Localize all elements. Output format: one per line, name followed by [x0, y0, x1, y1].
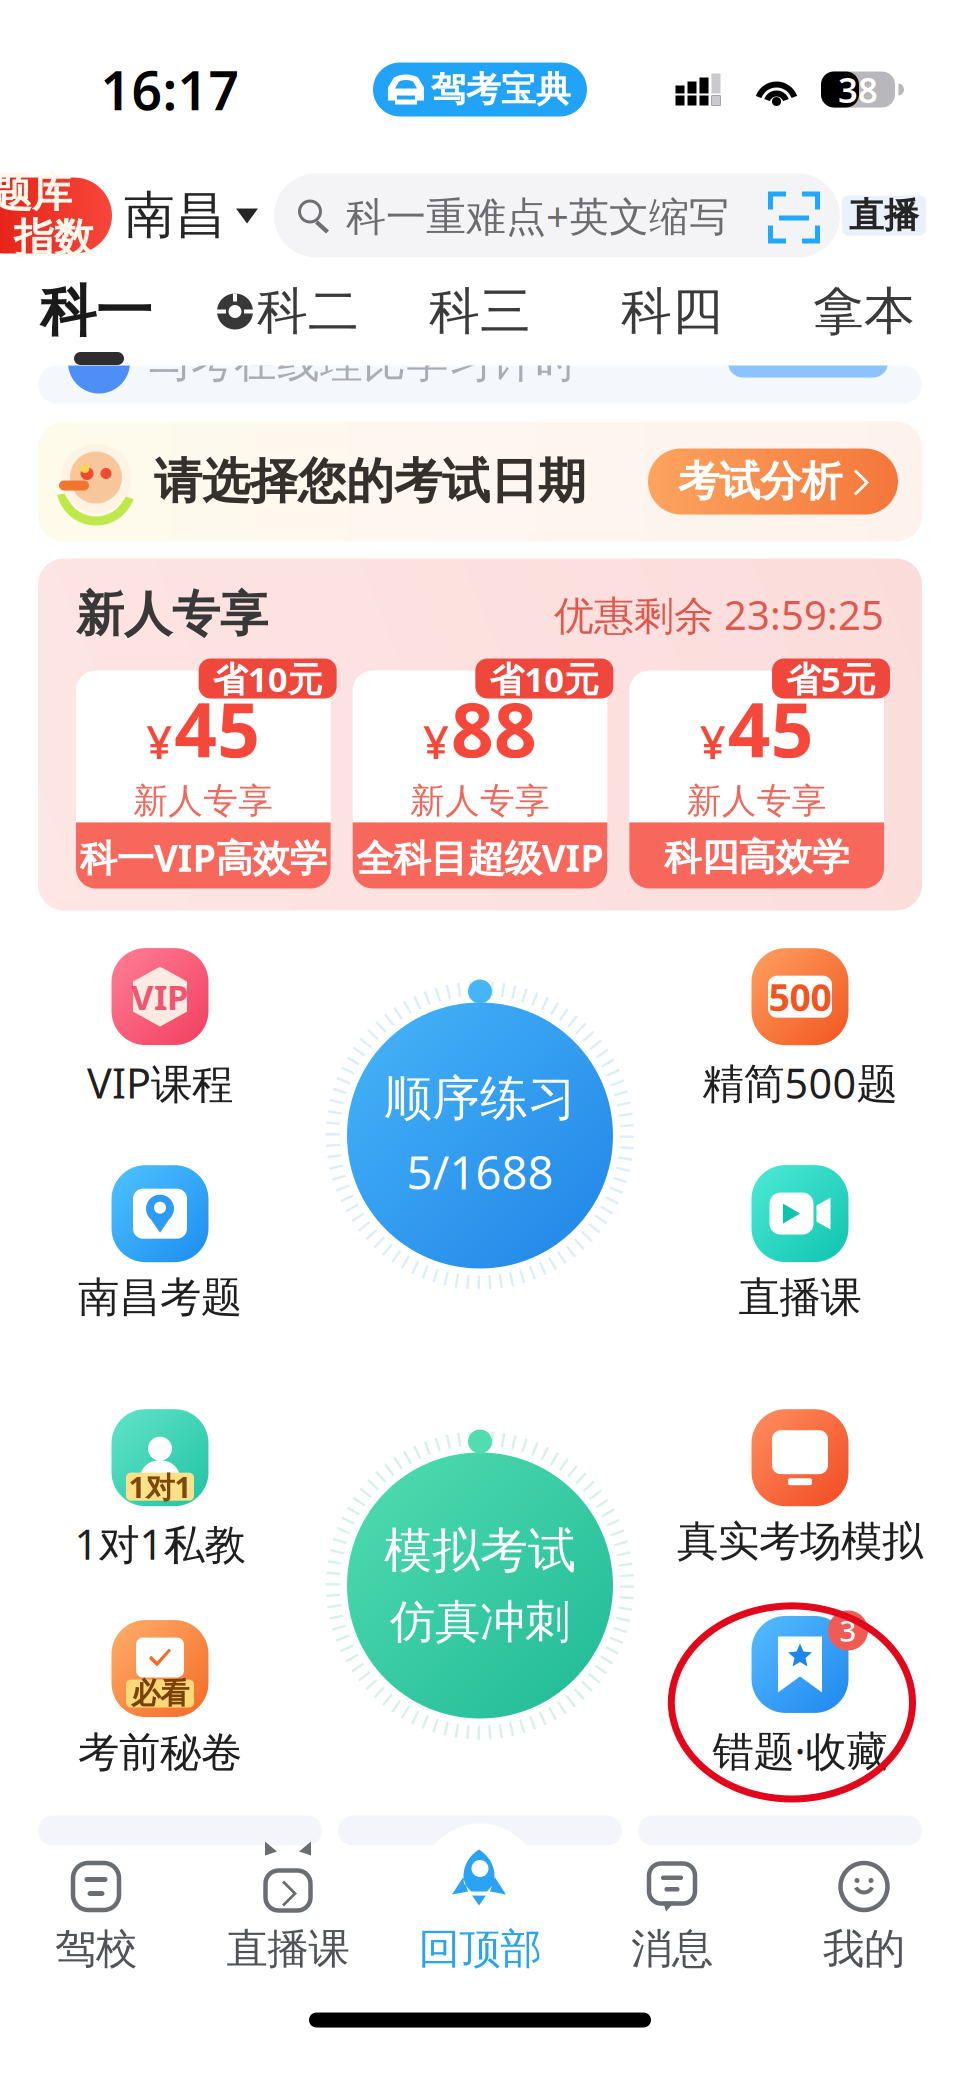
- staticText: 直播课: [226, 1923, 349, 1974]
- button[interactable]: 科四: [576, 271, 768, 351]
- button[interactable]: 3: [712, 1616, 887, 1778]
- staticText: 指数: [14, 213, 94, 263]
- button[interactable]: 500: [702, 948, 897, 1110]
- staticText: 拿本: [813, 280, 915, 343]
- button[interactable]: 直播课: [192, 1845, 384, 1977]
- staticText: 真实考场模拟: [677, 1516, 923, 1567]
- button[interactable]: 真实考场模拟: [677, 1409, 923, 1567]
- button[interactable]: ¥: [353, 670, 607, 888]
- staticText: 考试分析: [678, 456, 842, 507]
- button[interactable]: 我的: [768, 1845, 960, 1977]
- button[interactable]: ¥: [629, 670, 884, 888]
- staticText: 精简500题: [702, 1055, 897, 1110]
- staticText: 考前秘卷: [78, 1727, 242, 1778]
- staticText: 消息: [631, 1923, 713, 1974]
- button[interactable]: 南昌: [124, 172, 256, 258]
- staticText: 我的: [823, 1923, 905, 1974]
- staticText: 45: [728, 679, 814, 778]
- button[interactable]: 回顶部: [384, 1845, 576, 1977]
- button[interactable]: 请选择您的考试日期: [0, 405, 960, 551]
- staticText: 科四: [621, 280, 723, 343]
- staticText: ¥: [423, 712, 449, 772]
- staticText: 科四高效学: [664, 834, 849, 880]
- button[interactable]: ¥: [76, 670, 331, 888]
- button[interactable]: 科一重难点+英文缩写: [274, 173, 840, 257]
- staticText: 1对1私教: [74, 1516, 245, 1571]
- staticText: 新人专享: [410, 780, 550, 822]
- staticText: 38: [838, 66, 878, 112]
- staticText: 省10元: [489, 655, 599, 701]
- button[interactable]: 直播: [842, 195, 926, 235]
- button[interactable]: 直播课: [738, 1165, 861, 1323]
- staticText: VIP: [131, 973, 189, 1019]
- staticText: 16:17: [100, 54, 239, 125]
- button[interactable]: 科二: [192, 271, 384, 351]
- staticText: 1对1: [128, 1467, 191, 1506]
- button[interactable]: 题库指数: [0, 177, 112, 253]
- staticText: 题库: [0, 168, 72, 217]
- button[interactable]: 顺序练习: [325, 980, 635, 1290]
- staticText: 顺序练习: [384, 1069, 576, 1128]
- button[interactable]: 1对1: [74, 1409, 245, 1571]
- staticText: 驾校: [55, 1923, 137, 1974]
- staticText: 科一重难点+英文缩写: [346, 189, 729, 242]
- button[interactable]: 科三: [384, 271, 576, 351]
- button[interactable]: 南昌考题: [78, 1165, 242, 1323]
- staticText: VIP课程: [87, 1055, 233, 1110]
- staticText: 新人专享: [687, 780, 827, 822]
- staticText: 88: [451, 679, 537, 778]
- staticText: 3: [839, 1611, 856, 1650]
- staticText: 马考在线理比学习计时: [148, 336, 578, 389]
- staticText: 仿真冲刺: [390, 1594, 570, 1650]
- button[interactable]: VIP: [87, 948, 233, 1110]
- staticText: ¥: [146, 712, 172, 772]
- button[interactable]: 科一: [0, 271, 192, 351]
- staticText: 省10元: [213, 655, 323, 701]
- staticText: 500: [768, 972, 831, 1021]
- staticText: 必看: [131, 1675, 189, 1711]
- staticText: 请选择您的考试日期: [154, 452, 586, 511]
- staticText: 直播课: [738, 1272, 861, 1323]
- staticText: 直播: [849, 194, 919, 237]
- staticText: 全科目超级VIP: [356, 833, 603, 882]
- staticText: 错题·收藏: [712, 1723, 887, 1778]
- staticText: 新人专享: [76, 585, 268, 644]
- button[interactable]: 模拟考试: [325, 1430, 635, 1740]
- staticText: ¥: [700, 712, 726, 772]
- staticText: 5/1688: [406, 1142, 553, 1202]
- staticText: 45: [174, 679, 260, 778]
- button[interactable]: 驾校: [0, 1845, 192, 1977]
- button[interactable]: 拿本: [768, 271, 960, 351]
- staticText: 回顶部: [418, 1923, 541, 1974]
- staticText: 优惠剩余 23:59:25: [554, 588, 884, 641]
- staticText: 新人专享: [133, 780, 273, 822]
- staticText: 省5元: [786, 655, 876, 701]
- staticText: 驾考宝典: [431, 68, 571, 111]
- button[interactable]: 必看: [78, 1620, 242, 1778]
- staticText: 科一: [40, 277, 152, 346]
- button[interactable]: 消息: [576, 1845, 768, 1977]
- staticText: 南昌: [124, 184, 226, 247]
- staticText: 南昌考题: [78, 1272, 242, 1323]
- staticText: 科二: [257, 280, 359, 343]
- staticText: 模拟考试: [384, 1521, 576, 1580]
- staticText: 科三: [429, 280, 531, 343]
- staticText: 科一VIP高效学: [80, 833, 327, 882]
